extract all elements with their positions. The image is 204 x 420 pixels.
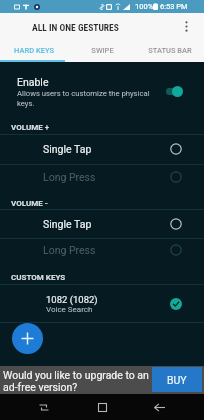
button[interactable]: Single Tap: [0, 134, 204, 164]
staticText: STATUS BAR: [148, 46, 192, 55]
button[interactable]: Home: [89, 394, 115, 420]
staticText: Long Press: [43, 244, 96, 256]
staticText: Allows users to customize the physical k…: [17, 89, 153, 107]
staticText: Enable: [17, 76, 49, 88]
button[interactable]: Recents: [31, 394, 57, 420]
button[interactable]: BUY: [152, 367, 202, 392]
button[interactable]: HARD KEYS: [0, 40, 68, 62]
staticText: Voice Search: [46, 305, 93, 314]
staticText: SWIPE: [91, 46, 114, 55]
staticText: Would you like to upgrade to an ad-free …: [3, 369, 153, 394]
button[interactable]: More options: [176, 13, 196, 40]
button[interactable]: Long Press: [0, 238, 204, 262]
staticText: VOLUME -: [11, 199, 48, 208]
staticText: Long Press: [43, 171, 96, 183]
staticText: Single Tap: [43, 218, 92, 230]
staticText: 100%: [135, 2, 154, 11]
staticText: HARD KEYS: [14, 46, 54, 55]
button[interactable]: Long Press: [0, 165, 204, 188]
staticText: 6:53 PM: [160, 2, 188, 11]
staticText: 1082 (1082): [46, 294, 98, 305]
button[interactable]: Add: [12, 323, 43, 354]
staticText: ALL IN ONE GESTURES: [32, 22, 119, 33]
staticText: VOLUME +: [11, 123, 50, 132]
button[interactable]: SWIPE: [68, 40, 136, 62]
staticText: CUSTOM KEYS: [11, 273, 66, 282]
button[interactable]: Back: [146, 394, 172, 420]
staticText: Single Tap: [43, 143, 92, 155]
button[interactable]: 1082 (1082): [0, 285, 204, 322]
button[interactable]: STATUS BAR: [136, 40, 204, 62]
button[interactable]: Enable: [0, 62, 204, 114]
button[interactable]: Single Tap: [0, 209, 204, 238]
staticText: BUY: [167, 374, 187, 386]
